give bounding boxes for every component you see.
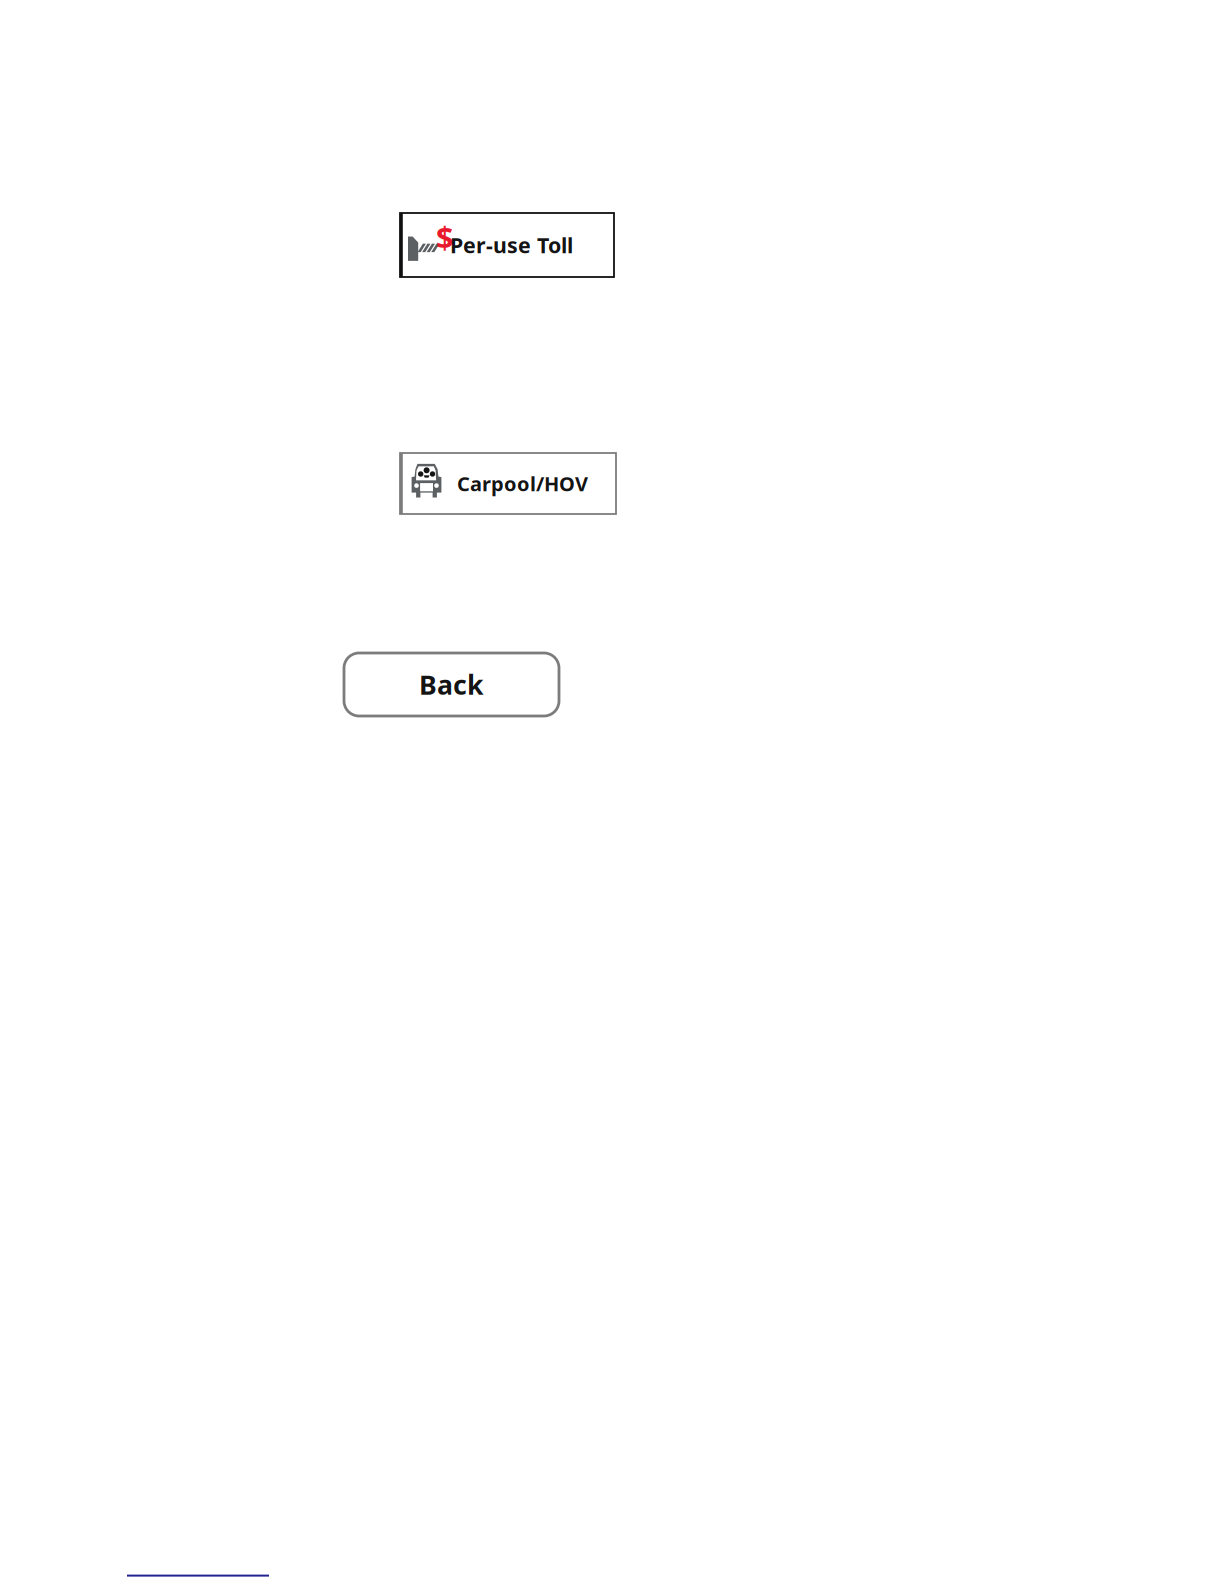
button[interactable]: $ xyxy=(400,213,614,277)
staticText: $ xyxy=(436,216,454,257)
button[interactable]: Back xyxy=(344,653,559,716)
staticText: Carpool/HOV xyxy=(457,470,588,497)
staticText: Back xyxy=(419,667,484,702)
staticText: Per-use Toll xyxy=(450,231,573,259)
button[interactable]: Carpool/HOV xyxy=(400,453,616,514)
